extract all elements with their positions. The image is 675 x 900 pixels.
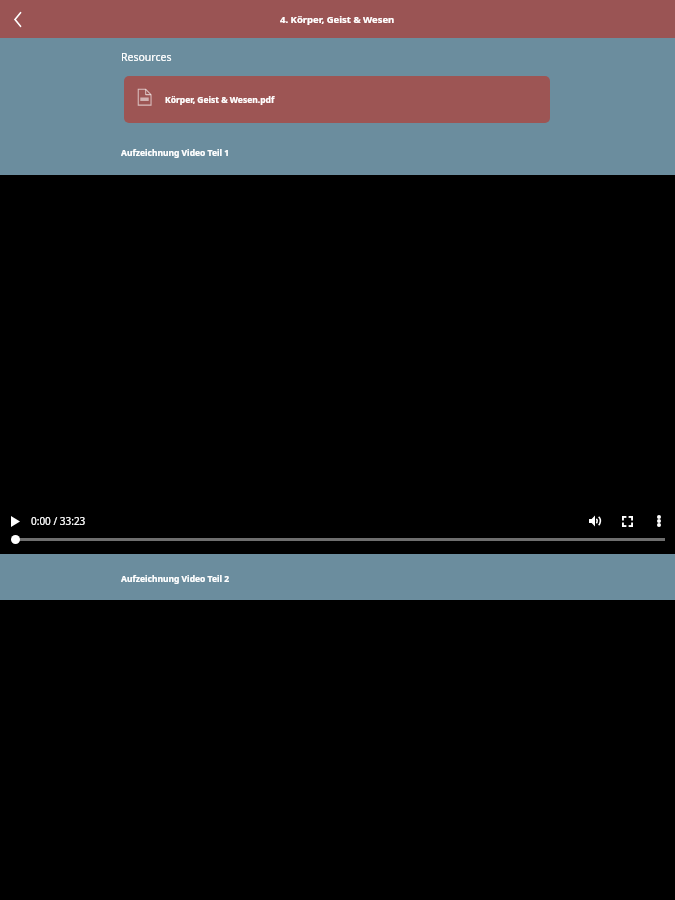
- button[interactable]: Volume: [584, 510, 606, 532]
- button[interactable]: Play: [7, 513, 23, 529]
- staticText: Resources: [121, 50, 172, 64]
- button[interactable]: Seek: [11, 535, 20, 544]
- staticText: 0:00 / 33:23: [31, 514, 86, 528]
- staticText: Aufzeichnung Video Teil 2: [121, 573, 230, 585]
- staticText: Körper, Geist & Wesen.pdf: [165, 94, 275, 106]
- button[interactable]: More options: [648, 510, 670, 532]
- button[interactable]: Back: [0, 2, 34, 36]
- button[interactable]: Fullscreen: [616, 510, 638, 532]
- button[interactable]: Körper, Geist & Wesen.pdf: [124, 76, 550, 123]
- staticText: Aufzeichnung Video Teil 1: [121, 147, 230, 159]
- staticText: 4. Körper, Geist & Wesen: [280, 13, 395, 26]
